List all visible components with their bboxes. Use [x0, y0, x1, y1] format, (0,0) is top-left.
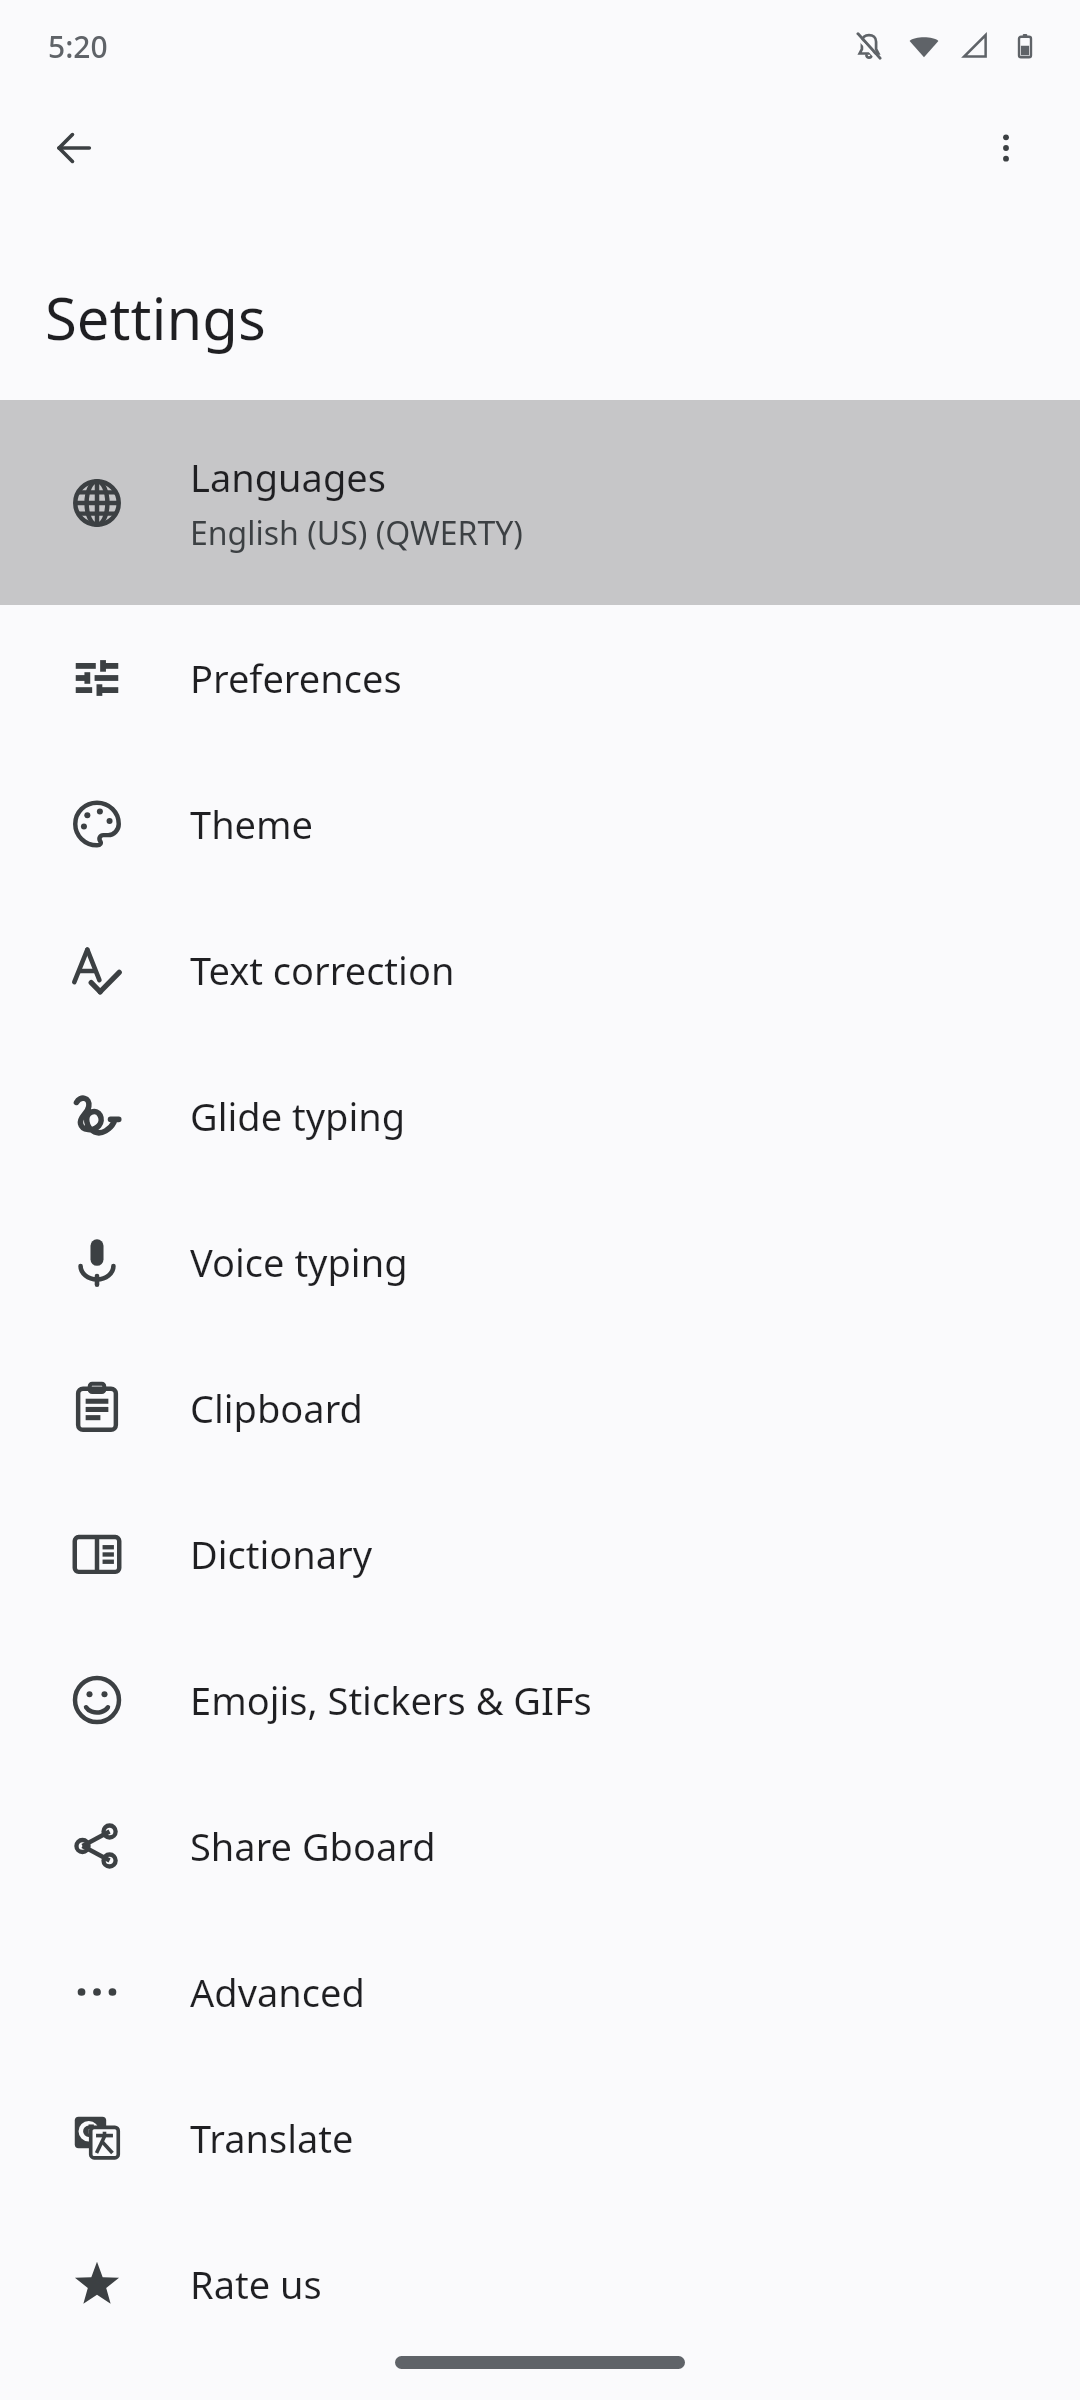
button[interactable]: Preferences	[0, 605, 1080, 751]
staticText: Emojis, Stickers & GIFs	[190, 1674, 592, 1726]
button[interactable]: Clipboard	[0, 1335, 1080, 1481]
staticText: Translate	[190, 2112, 354, 2164]
button[interactable]: Theme	[0, 751, 1080, 897]
button[interactable]: Emojis, Stickers & GIFs	[0, 1627, 1080, 1773]
staticText: Dictionary	[190, 1528, 373, 1580]
button[interactable]: More options	[958, 100, 1054, 196]
button[interactable]: Voice typing	[0, 1189, 1080, 1335]
button[interactable]: Translate	[0, 2065, 1080, 2211]
button[interactable]: Glide typing	[0, 1043, 1080, 1189]
staticText: Clipboard	[190, 1382, 363, 1434]
staticText: Theme	[190, 798, 314, 850]
button[interactable]: Back	[26, 100, 122, 196]
staticText: Rate us	[190, 2258, 322, 2310]
staticText: Text correction	[190, 944, 455, 996]
staticText: Glide typing	[190, 1090, 406, 1142]
staticText: Advanced	[190, 1966, 365, 2018]
staticText: Settings	[45, 278, 266, 357]
staticText: 5:20	[48, 26, 108, 67]
button[interactable]: Dictionary	[0, 1481, 1080, 1627]
button[interactable]: Text correction	[0, 897, 1080, 1043]
staticText: Preferences	[190, 652, 402, 704]
button[interactable]: Rate us	[0, 2211, 1080, 2357]
button[interactable]: Advanced	[0, 1919, 1080, 2065]
staticText: English (US) (QWERTY)	[190, 511, 523, 555]
staticText: Languages	[190, 451, 386, 503]
staticText: Voice typing	[190, 1236, 408, 1288]
button[interactable]: Languages	[0, 400, 1080, 605]
staticText: Share Gboard	[190, 1820, 436, 1872]
button[interactable]: Share Gboard	[0, 1773, 1080, 1919]
